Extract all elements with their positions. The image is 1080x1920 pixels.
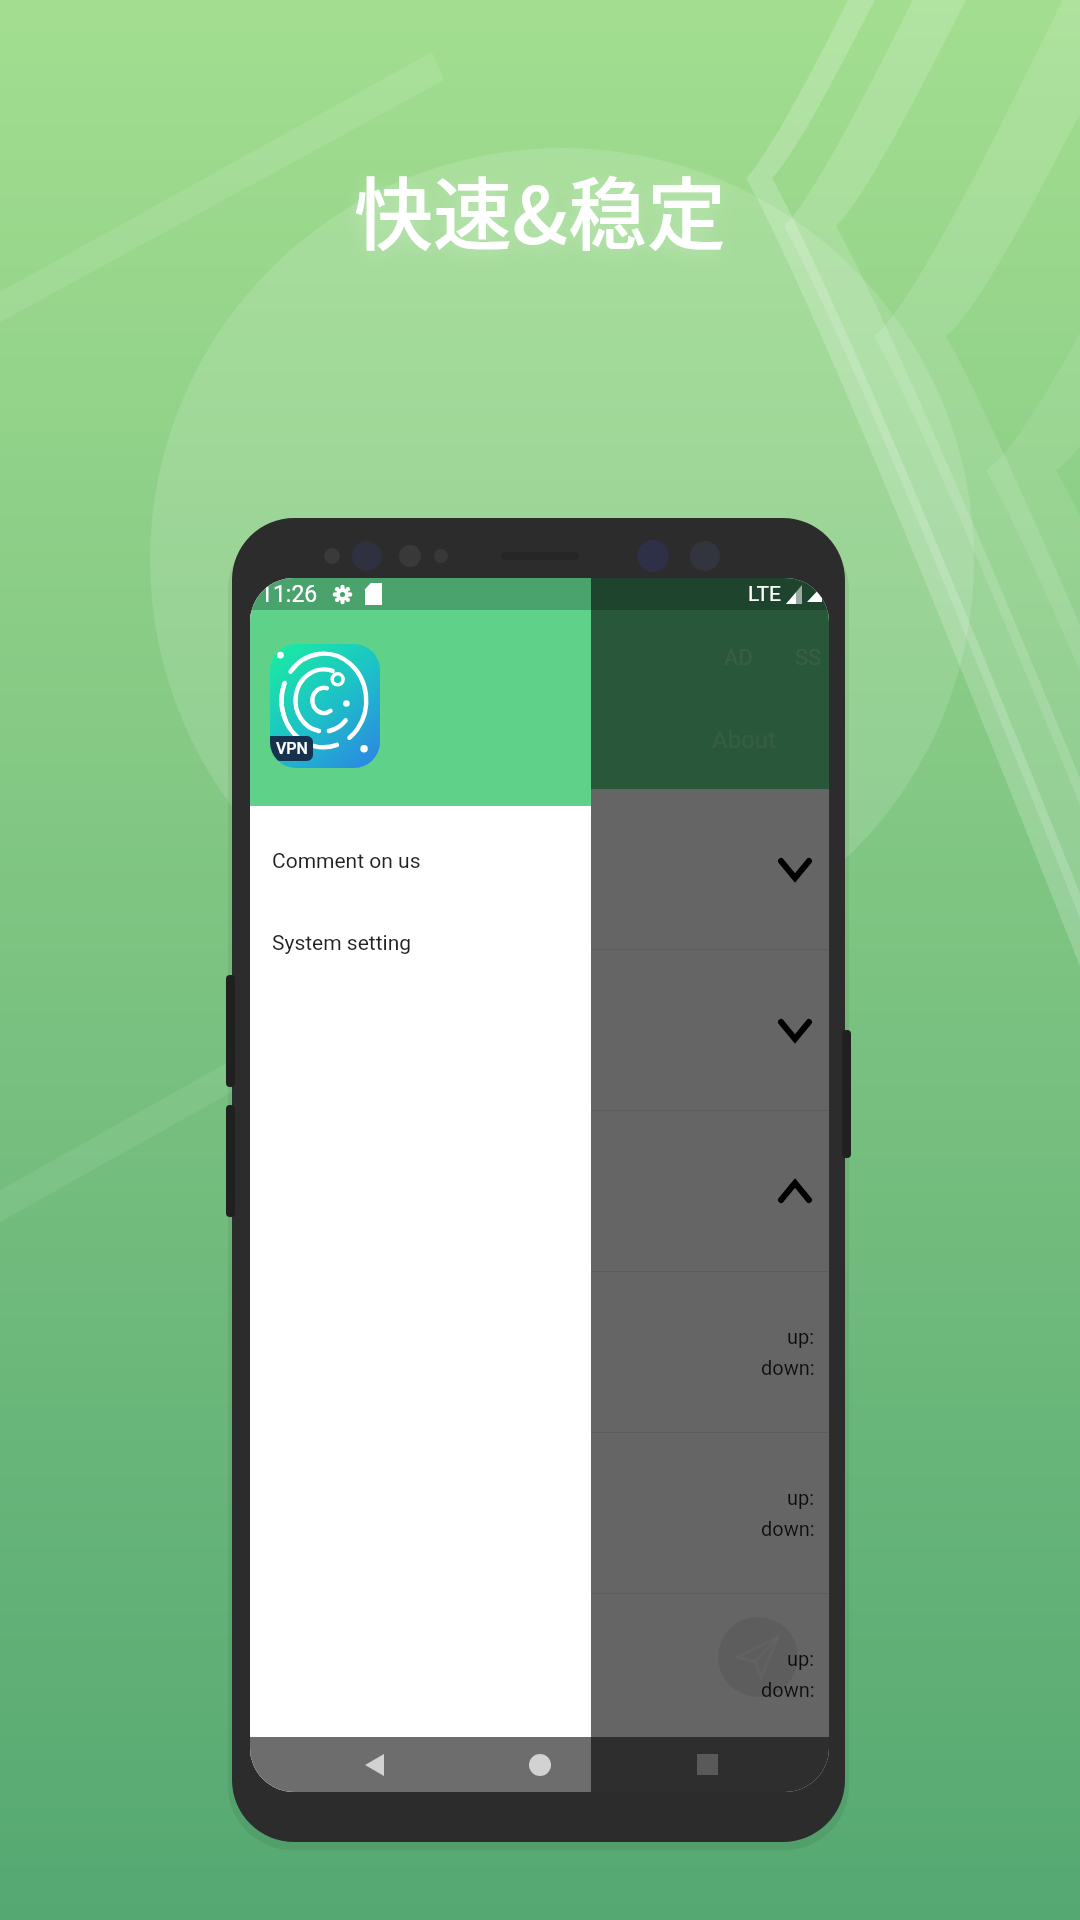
staticText: up:: [787, 1325, 815, 1348]
button[interactable]: Comment on us: [250, 820, 591, 902]
button[interactable]: System setting: [250, 902, 591, 984]
staticText: Comment on us: [272, 849, 421, 874]
button[interactable]: AD: [702, 634, 774, 682]
staticText: 11:26: [260, 581, 318, 608]
button[interactable]: up:: [250, 1594, 829, 1754]
button[interactable]: Connect: [718, 1617, 798, 1697]
button[interactable]: up:: [250, 1433, 829, 1593]
staticText: down:: [761, 1356, 815, 1379]
button[interactable]: Collapse section: [250, 1111, 829, 1271]
button[interactable]: up:: [250, 1272, 829, 1432]
button[interactable]: Home: [517, 1737, 563, 1792]
staticText: SS: [795, 645, 822, 671]
staticText: down:: [761, 1517, 815, 1540]
staticText: AD: [724, 645, 753, 671]
staticText: System setting: [272, 931, 412, 956]
staticText: up:: [787, 1647, 815, 1670]
staticText: up:: [787, 1486, 815, 1509]
button[interactable]: Expand section: [250, 789, 829, 949]
staticText: LTE: [748, 582, 781, 607]
button[interactable]: SS: [772, 634, 829, 682]
staticText: down:: [761, 1678, 815, 1701]
staticText: 快速&稳定: [354, 152, 726, 266]
button[interactable]: Expand section: [250, 950, 829, 1110]
button[interactable]: Recents: [684, 1737, 730, 1792]
button[interactable]: Back: [351, 1737, 397, 1792]
staticText: About: [712, 726, 776, 754]
staticText: VPN: [276, 739, 308, 758]
